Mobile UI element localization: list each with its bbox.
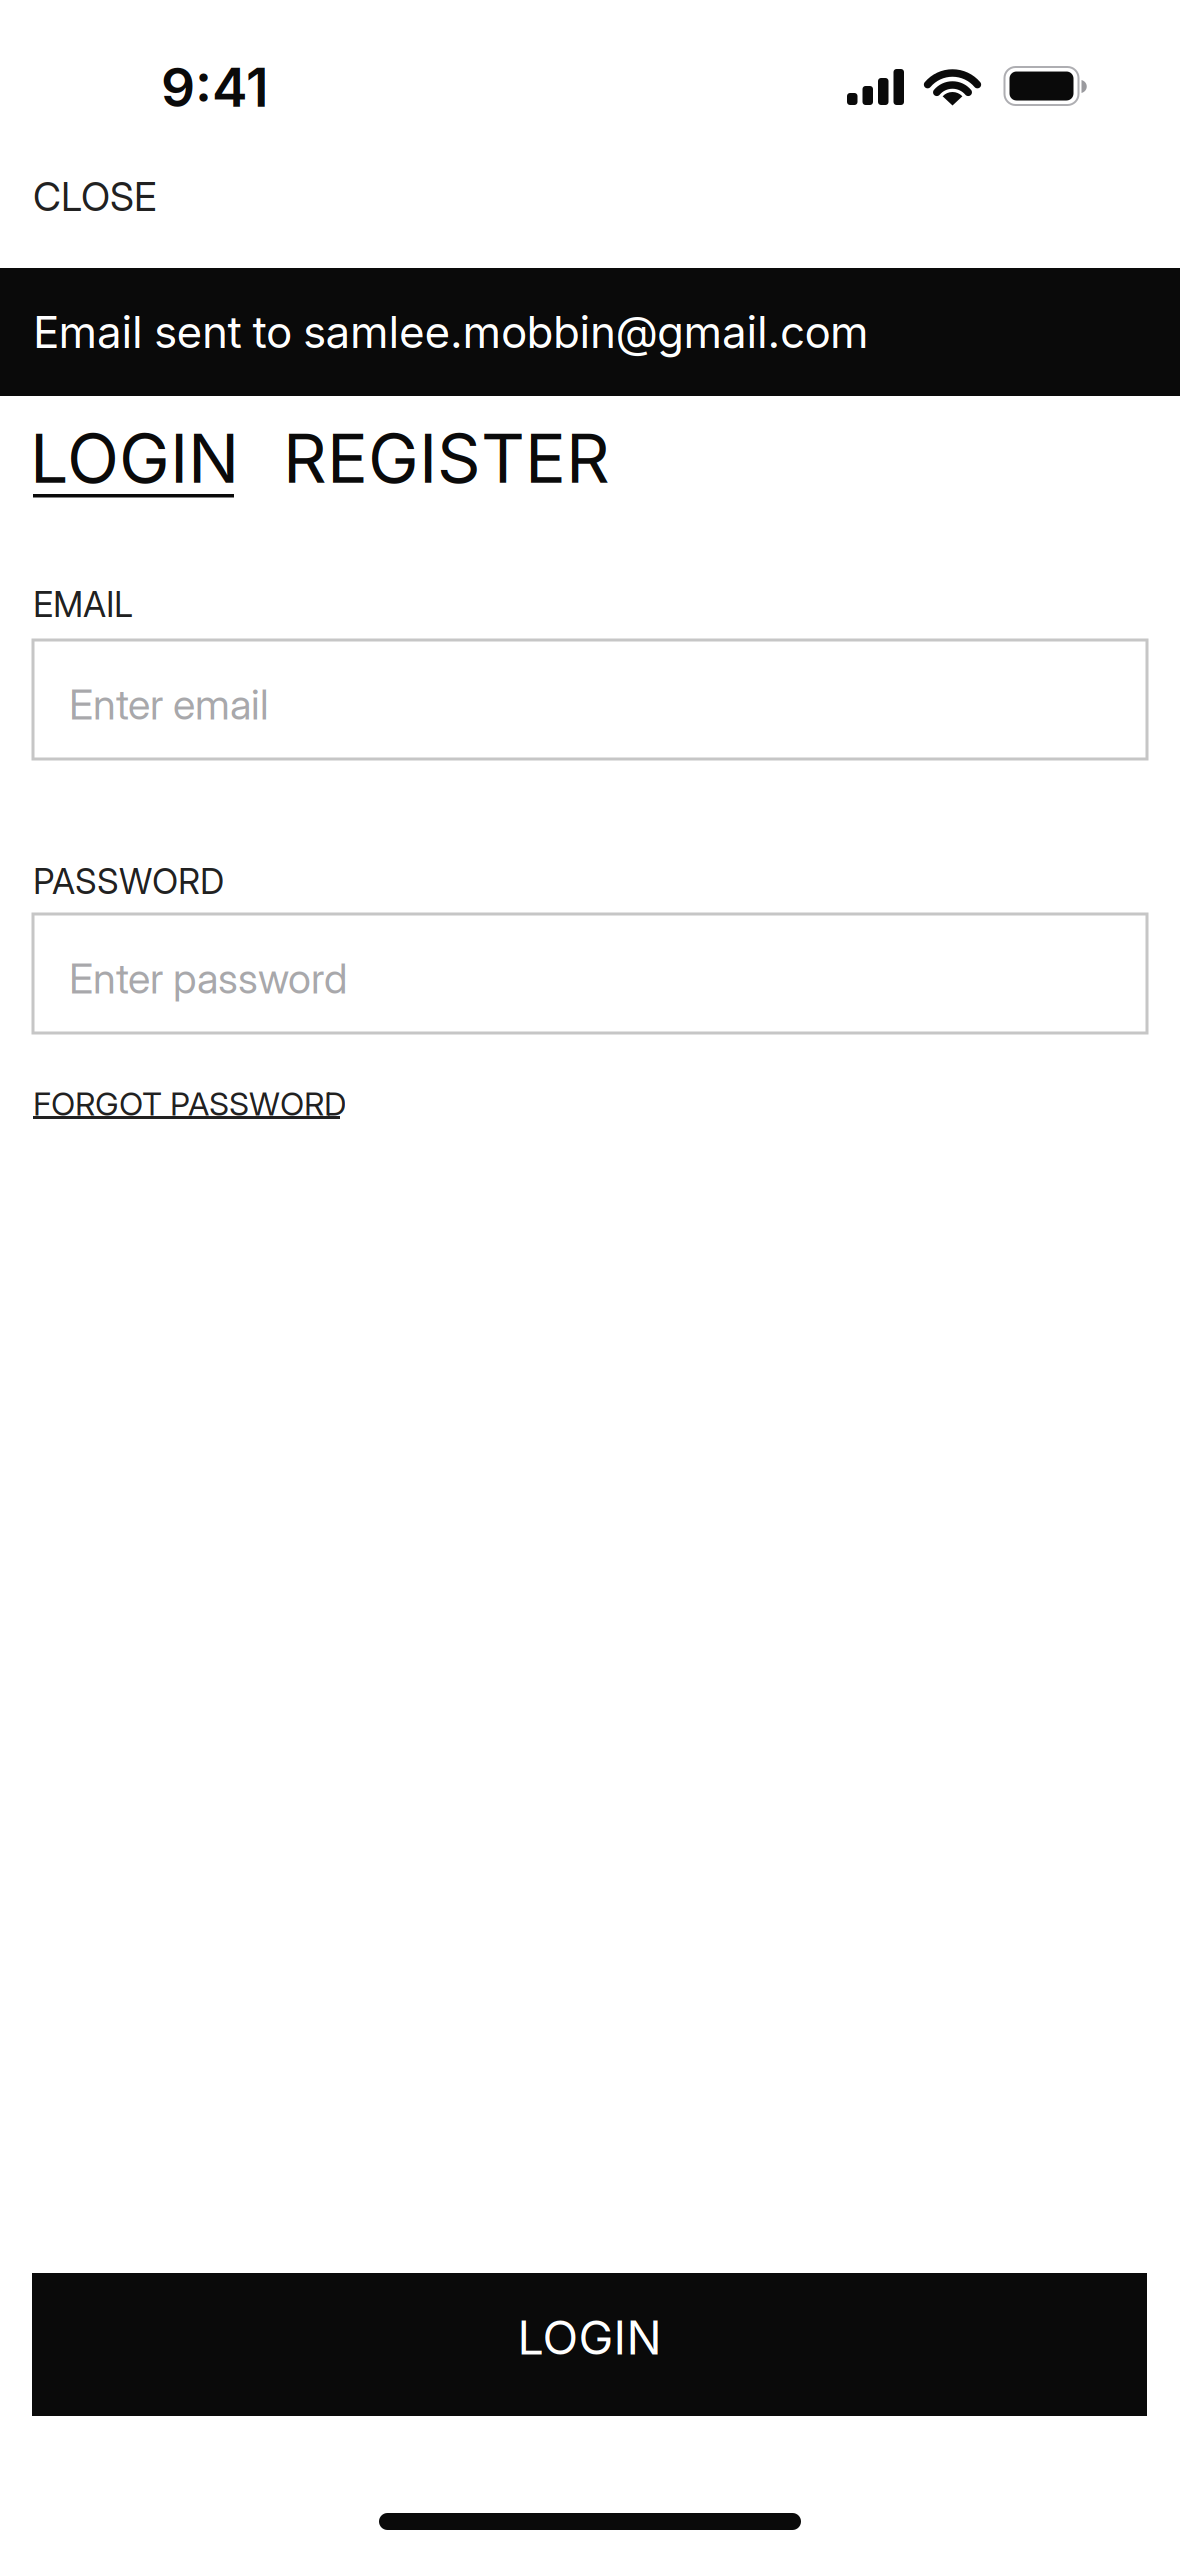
- button[interactable]: LOGIN: [32, 2273, 1147, 2416]
- staticText: Enter password: [69, 954, 347, 1003]
- staticText: LOGIN: [517, 2310, 661, 2365]
- button[interactable]: Email: [33, 640, 1147, 759]
- staticText: CLOSE: [33, 174, 157, 220]
- staticText: PASSWORD: [33, 861, 224, 902]
- staticText: EMAIL: [33, 584, 133, 625]
- staticText: Enter email: [69, 680, 269, 729]
- button[interactable]: LOGIN: [30, 418, 239, 498]
- button[interactable]: REGISTER: [283, 418, 610, 498]
- staticText: Email sent to samlee.mobbin@gmail.com: [33, 306, 869, 358]
- button[interactable]: Password: [33, 914, 1147, 1033]
- button[interactable]: FORGOT PASSWORD: [33, 1085, 347, 1123]
- button[interactable]: Close: [33, 174, 157, 220]
- staticText: LOGIN: [30, 418, 239, 498]
- staticText: FORGOT PASSWORD: [33, 1085, 347, 1123]
- staticText: REGISTER: [283, 418, 610, 498]
- staticText: 9:41: [161, 56, 269, 119]
